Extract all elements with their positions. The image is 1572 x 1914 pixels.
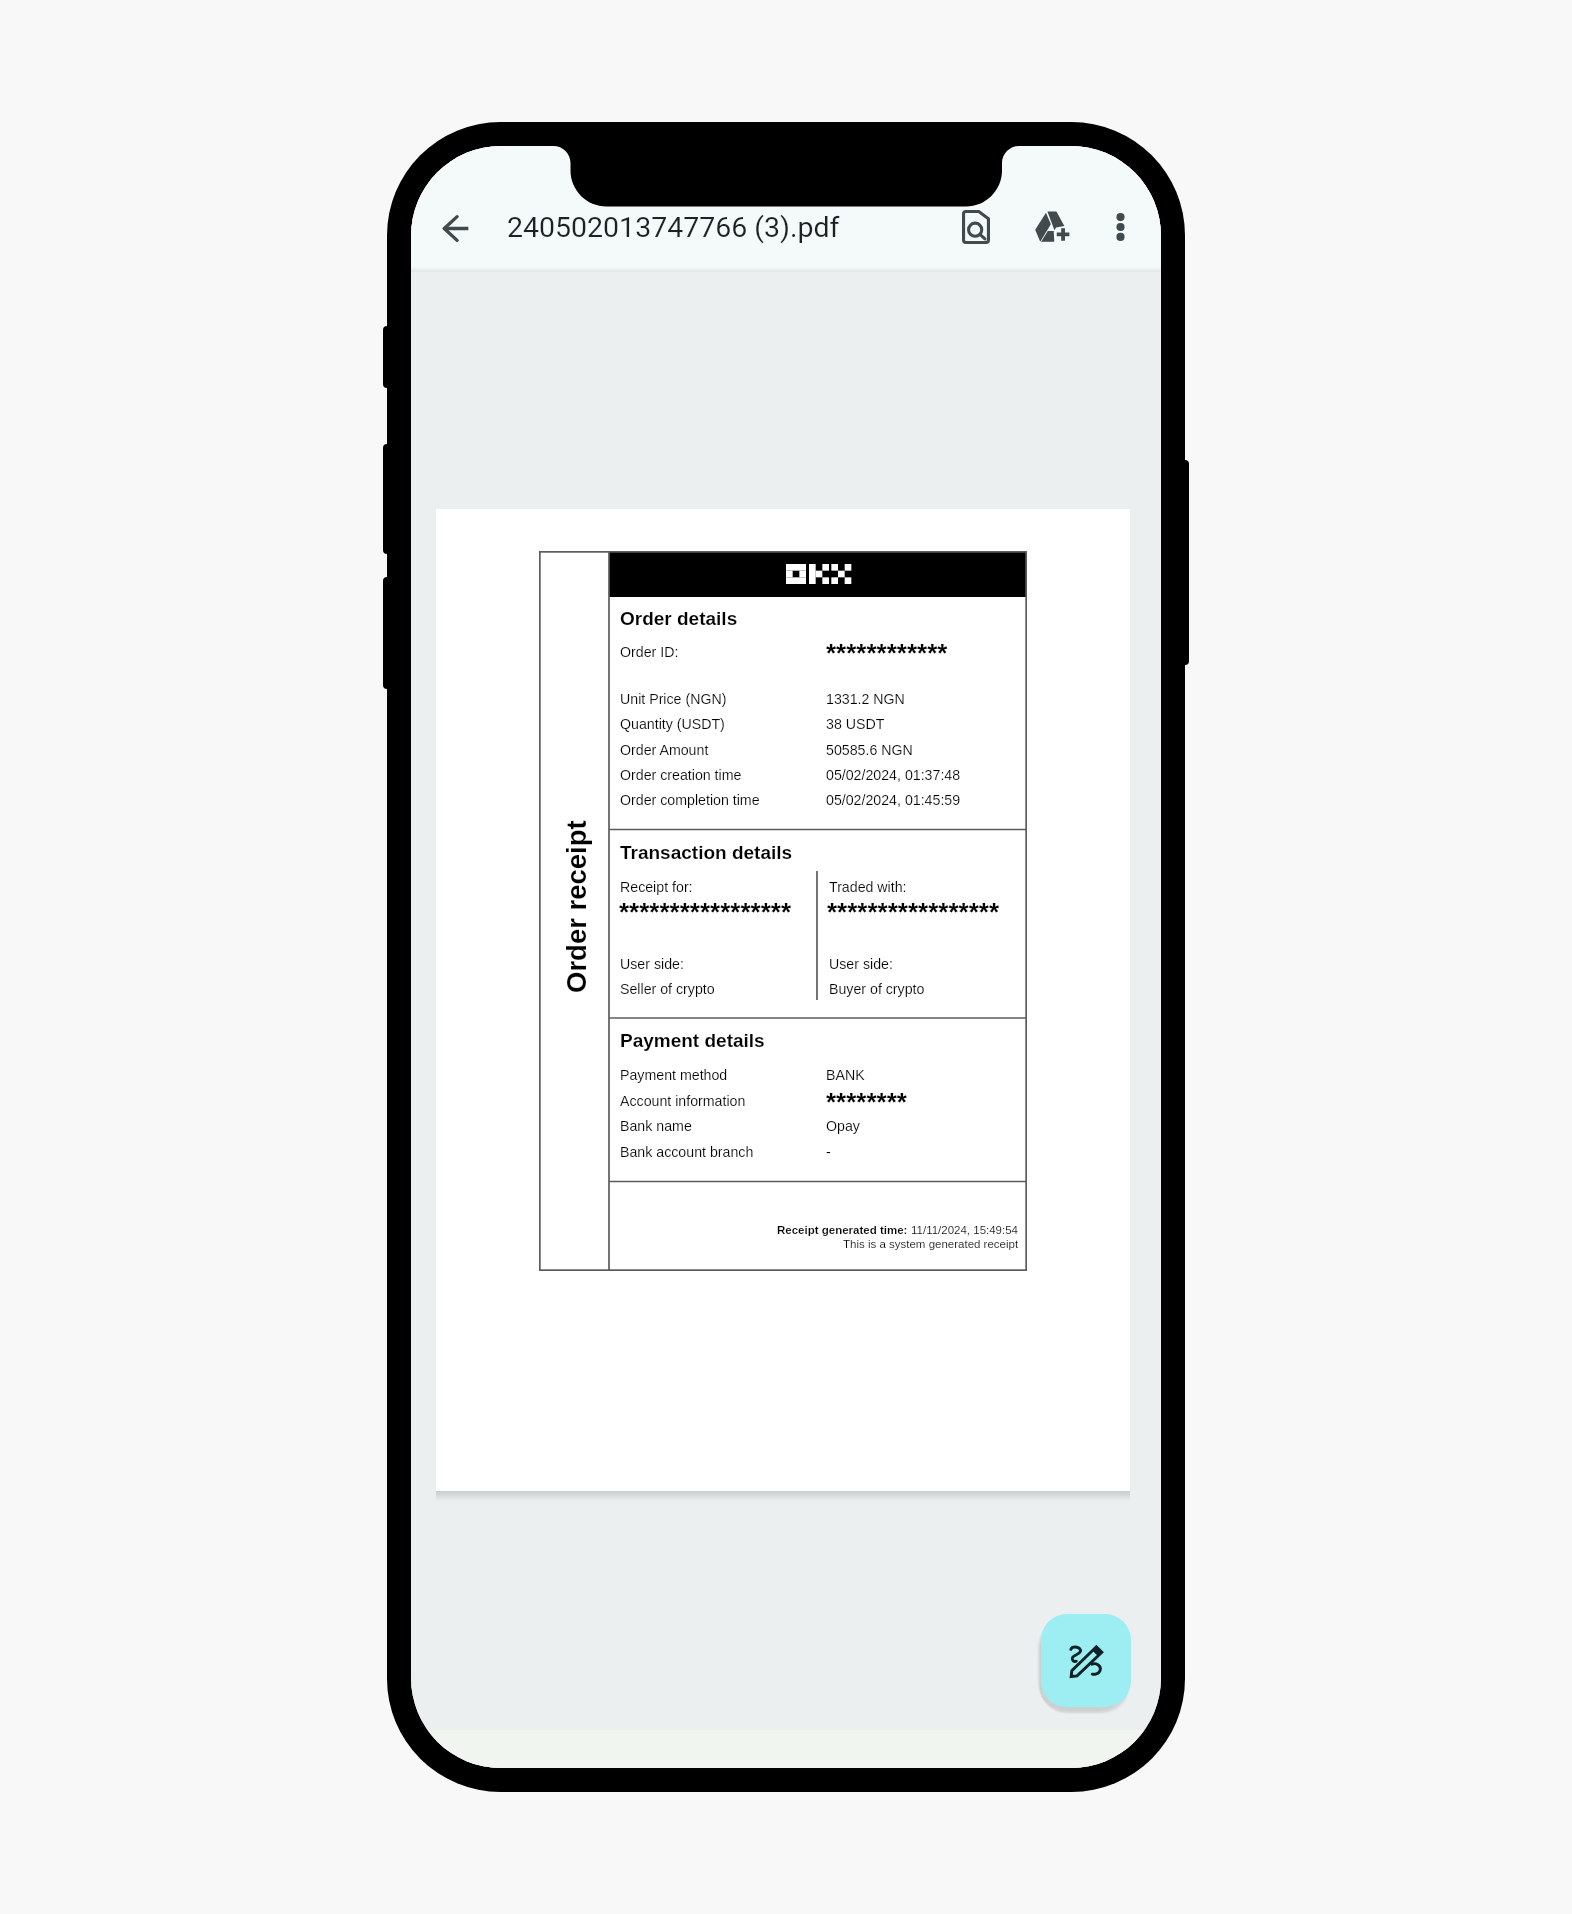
staticText: Order receipt [561, 820, 592, 993]
staticText: Transaction details [620, 842, 793, 863]
button[interactable]: Save to Drive [1023, 196, 1083, 256]
staticText: ******** [826, 1087, 907, 1116]
staticText: 240502013747766 (3).pdf [507, 211, 840, 244]
staticText: Receipt for: [620, 879, 693, 895]
staticText: Seller of crypto [620, 981, 715, 997]
staticText: Order details [620, 608, 738, 629]
staticText: User side: [620, 956, 684, 972]
staticText: Bank account branch [620, 1144, 754, 1160]
staticText: - [826, 1144, 831, 1160]
staticText: ***************** [827, 897, 1000, 926]
button[interactable]: Annotate [1041, 1614, 1131, 1707]
staticText: Buyer of crypto [829, 981, 925, 997]
staticText: 38 USDT [826, 716, 885, 732]
staticText: This is a system generated receipt [843, 1238, 1019, 1251]
button[interactable]: Back [426, 198, 486, 258]
staticText: Payment method [620, 1067, 728, 1083]
staticText: Opay [826, 1118, 860, 1134]
staticText: BANK [826, 1067, 865, 1083]
staticText: Traded with: [829, 879, 907, 895]
staticText: Order Amount [620, 742, 709, 758]
button[interactable]: More options [1090, 197, 1150, 257]
button[interactable]: Find in document [946, 197, 1006, 257]
staticText: Order completion time [620, 792, 760, 808]
staticText: Order creation time [620, 767, 742, 783]
staticText: Account information [620, 1093, 746, 1109]
staticText: 11/11/2024, 15:49:54 [911, 1224, 1019, 1237]
staticText: Quantity (USDT) [620, 716, 725, 732]
staticText: ************ [826, 638, 948, 667]
staticText: 50585.6 NGN [826, 742, 913, 758]
staticText: 05/02/2024, 01:37:48 [826, 767, 961, 783]
staticText: Order ID: [620, 644, 679, 660]
staticText: 1331.2 NGN [826, 691, 905, 707]
staticText: Unit Price (NGN) [620, 691, 727, 707]
staticText: Payment details [620, 1030, 765, 1051]
staticText: Bank name [620, 1118, 692, 1134]
staticText: Receipt generated time: [777, 1224, 911, 1237]
staticText: ***************** [619, 897, 792, 926]
staticText: User side: [829, 956, 893, 972]
staticText: 05/02/2024, 01:45:59 [826, 792, 961, 808]
